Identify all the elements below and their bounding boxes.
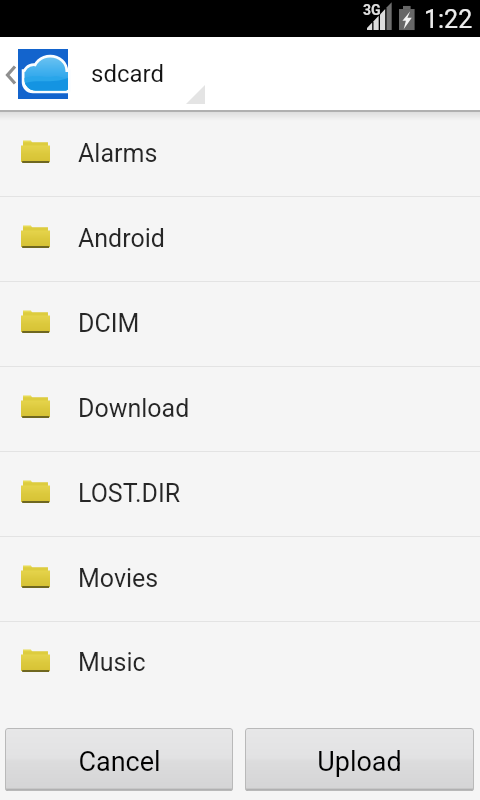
staticText: sdcard — [91, 60, 164, 88]
button[interactable]: Navigate up — [0, 37, 68, 112]
staticText: Cancel — [78, 746, 161, 778]
button[interactable]: Cancel — [5, 728, 233, 791]
button[interactable]: LOST.DIR — [0, 452, 480, 537]
button[interactable]: sdcard — [68, 37, 208, 112]
button[interactable]: Upload — [245, 728, 474, 791]
staticText: Music — [78, 648, 146, 677]
staticText: 1:22 — [424, 5, 473, 34]
staticText: Movies — [78, 564, 159, 593]
staticText: Upload — [317, 746, 402, 778]
staticText: Download — [78, 394, 190, 423]
button[interactable]: DCIM — [0, 282, 480, 367]
staticText: LOST.DIR — [78, 479, 181, 508]
button[interactable]: Alarms — [0, 112, 480, 197]
staticText: DCIM — [78, 309, 140, 338]
button[interactable]: Download — [0, 367, 480, 452]
button[interactable]: Movies — [0, 537, 480, 622]
staticText: Alarms — [78, 139, 158, 168]
button[interactable]: Android — [0, 197, 480, 282]
staticText: 3G — [363, 2, 381, 18]
button[interactable]: Music — [0, 622, 480, 705]
staticText: Android — [78, 224, 165, 253]
